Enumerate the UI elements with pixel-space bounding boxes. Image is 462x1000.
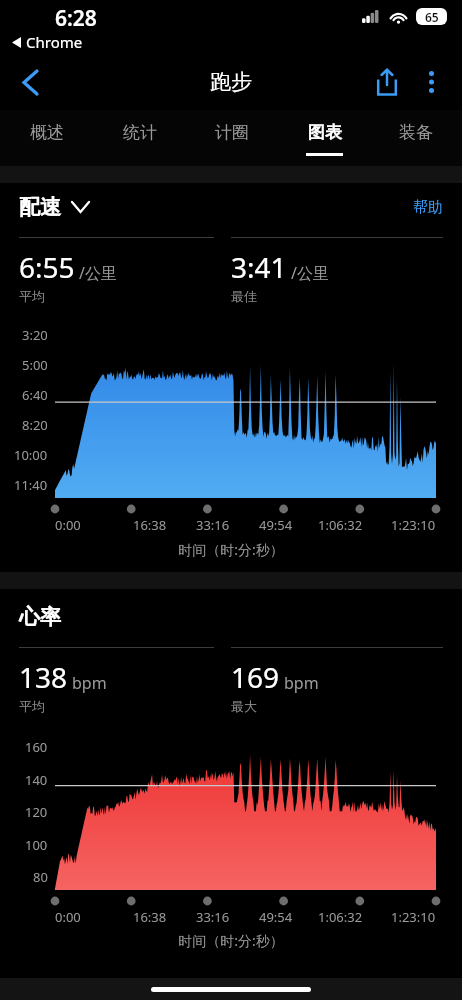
staticText: 49:54	[259, 516, 293, 534]
button[interactable]: 配速	[19, 194, 89, 220]
staticText: 49:54	[259, 908, 293, 926]
staticText: 最佳	[231, 288, 257, 304]
staticText: 帮助	[413, 198, 443, 217]
staticText: 160	[25, 738, 48, 756]
button[interactable]: 帮助	[413, 198, 443, 217]
staticText: 时间（时:分:秒）	[0, 931, 462, 950]
staticText: 11:40	[14, 476, 48, 494]
staticText: 装备	[399, 122, 433, 143]
staticText: 33:16	[196, 908, 230, 926]
staticText: 1:23:10	[391, 908, 436, 926]
staticText: bpm	[72, 672, 107, 694]
staticText: 169	[231, 658, 280, 696]
staticText: 6:40	[22, 386, 48, 404]
button[interactable]: Share	[365, 60, 409, 104]
staticText: Chrome	[26, 32, 83, 52]
staticText: 16:38	[133, 908, 167, 926]
staticText: /公里	[291, 262, 329, 284]
staticText: 图表	[308, 122, 342, 143]
staticText: 10:00	[14, 446, 48, 464]
staticText: 33:16	[196, 516, 230, 534]
staticText: bpm	[284, 672, 319, 694]
staticText: 1:06:32	[318, 516, 363, 534]
button[interactable]: 概述	[0, 110, 93, 166]
button[interactable]: 装备	[370, 110, 462, 166]
staticText: 5:00	[22, 356, 48, 374]
staticText: 140	[25, 771, 48, 789]
staticText: 16:38	[133, 516, 167, 534]
staticText: 6:55	[19, 248, 75, 286]
staticText: 配速	[19, 194, 61, 220]
staticText: 100	[25, 836, 48, 854]
staticText: 138	[19, 658, 68, 696]
staticText: 0:00	[55, 516, 81, 534]
staticText: 6:28	[55, 4, 97, 33]
button[interactable]: Back	[8, 60, 52, 104]
staticText: 最大	[231, 698, 257, 714]
button[interactable]: 统计	[93, 110, 186, 166]
staticText: 80	[33, 868, 48, 886]
staticText: 1:23:10	[391, 516, 436, 534]
staticText: 概述	[30, 122, 64, 143]
staticText: 0:00	[55, 908, 81, 926]
staticText: /公里	[79, 262, 117, 284]
staticText: 8:20	[22, 416, 48, 434]
button[interactable]: 图表	[278, 110, 370, 166]
staticText: 3:41	[231, 248, 287, 286]
button[interactable]: More options	[409, 60, 453, 104]
staticText: 心率	[19, 604, 61, 630]
button[interactable]: 计圈	[186, 110, 278, 166]
staticText: 1:06:32	[318, 908, 363, 926]
staticText: 时间（时:分:秒）	[0, 540, 462, 559]
staticText: 平均	[19, 698, 45, 714]
staticText: 65	[425, 9, 439, 25]
staticText: 统计	[123, 122, 157, 143]
staticText: 跑步	[210, 69, 252, 95]
staticText: 120	[25, 803, 48, 821]
staticText: 计圈	[215, 122, 249, 143]
staticText: 平均	[19, 288, 45, 304]
staticText: 3:20	[22, 326, 48, 344]
